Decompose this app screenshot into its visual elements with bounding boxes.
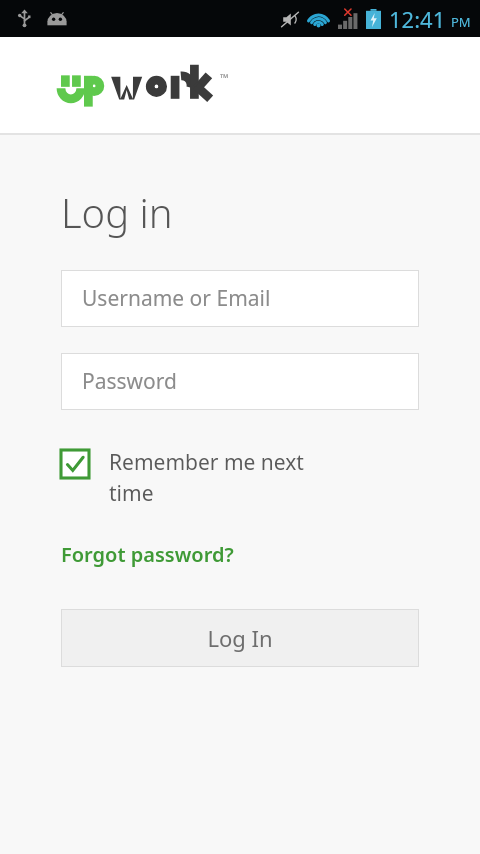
staticText: 12:41	[389, 4, 446, 34]
staticText: PM	[451, 13, 471, 31]
staticText: Username or Email	[82, 284, 271, 313]
button[interactable]: Password	[61, 353, 419, 410]
staticText: Forgot password?	[61, 541, 234, 568]
button[interactable]: Log In	[61, 609, 419, 667]
button[interactable]: Username or Email	[61, 270, 419, 327]
staticText: Log in	[61, 185, 173, 239]
staticText: ™	[220, 70, 229, 85]
button[interactable]: Remember me next time	[61, 448, 419, 507]
button[interactable]: Forgot password?	[61, 539, 234, 570]
staticText: Remember me next time	[109, 448, 334, 507]
staticText: Password	[82, 367, 177, 396]
staticText: Log In	[207, 623, 273, 653]
